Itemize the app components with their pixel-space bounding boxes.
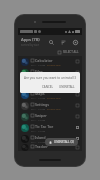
staticText: sorted by size [21, 43, 39, 47]
staticText: SELECT ALL [63, 50, 79, 54]
staticText: Tracker [35, 144, 48, 149]
staticText: Maps [35, 91, 45, 96]
button[interactable]: MakeStore [18, 78, 82, 89]
staticText: v2.1 · 14 MB [31, 107, 46, 110]
staticText: system app [47, 96, 61, 99]
staticText: v2.1 · 14 MB [31, 118, 46, 121]
staticText: CANCEL [42, 85, 53, 89]
button[interactable]: UNINSTALL [57, 84, 77, 90]
staticText: Calculator [35, 58, 53, 63]
staticText: v2.1 · 14 MB [31, 63, 46, 66]
staticText: system app [47, 107, 61, 110]
staticText: Files [35, 69, 43, 74]
button[interactable]: SELECT ALL [18, 48, 82, 56]
button[interactable]: Tracker [18, 144, 82, 151]
staticText: system app [47, 74, 61, 77]
staticText: v2.1 · 14 MB [31, 129, 46, 132]
staticText: Are you sure you want to uninstall 3 app… [24, 76, 77, 80]
staticText: Swiper [35, 113, 47, 118]
button[interactable]: CANCEL [40, 84, 55, 90]
button[interactable]: Maps [18, 89, 82, 100]
button[interactable]: UNINSTALL (3) [45, 138, 78, 146]
button[interactable]: Files [18, 67, 82, 78]
button[interactable]: Tic Tac Toe [18, 122, 82, 133]
button[interactable]: Settings [18, 100, 82, 111]
button[interactable]: Island [18, 133, 82, 144]
staticText: Tic Tac Toe [35, 124, 54, 129]
staticText: Apps (78) [21, 37, 40, 43]
button[interactable]: Calculator [18, 56, 82, 67]
staticText: v2.1 · 14 MB [31, 140, 46, 143]
staticText: v2.1 · 14 MB [31, 85, 46, 88]
button[interactable]: Search [47, 38, 55, 46]
button[interactable]: Settings [71, 38, 79, 46]
staticText: Settings [35, 102, 50, 107]
staticText: v2.1 · 14 MB [31, 96, 46, 99]
button[interactable]: Swiper [18, 111, 82, 122]
staticText: system app [47, 63, 61, 66]
staticText: Island [35, 135, 46, 140]
staticText: UNINSTALL (3) [54, 140, 74, 144]
button[interactable]: Sort [59, 38, 67, 46]
staticText: UNINSTALL [59, 85, 75, 89]
